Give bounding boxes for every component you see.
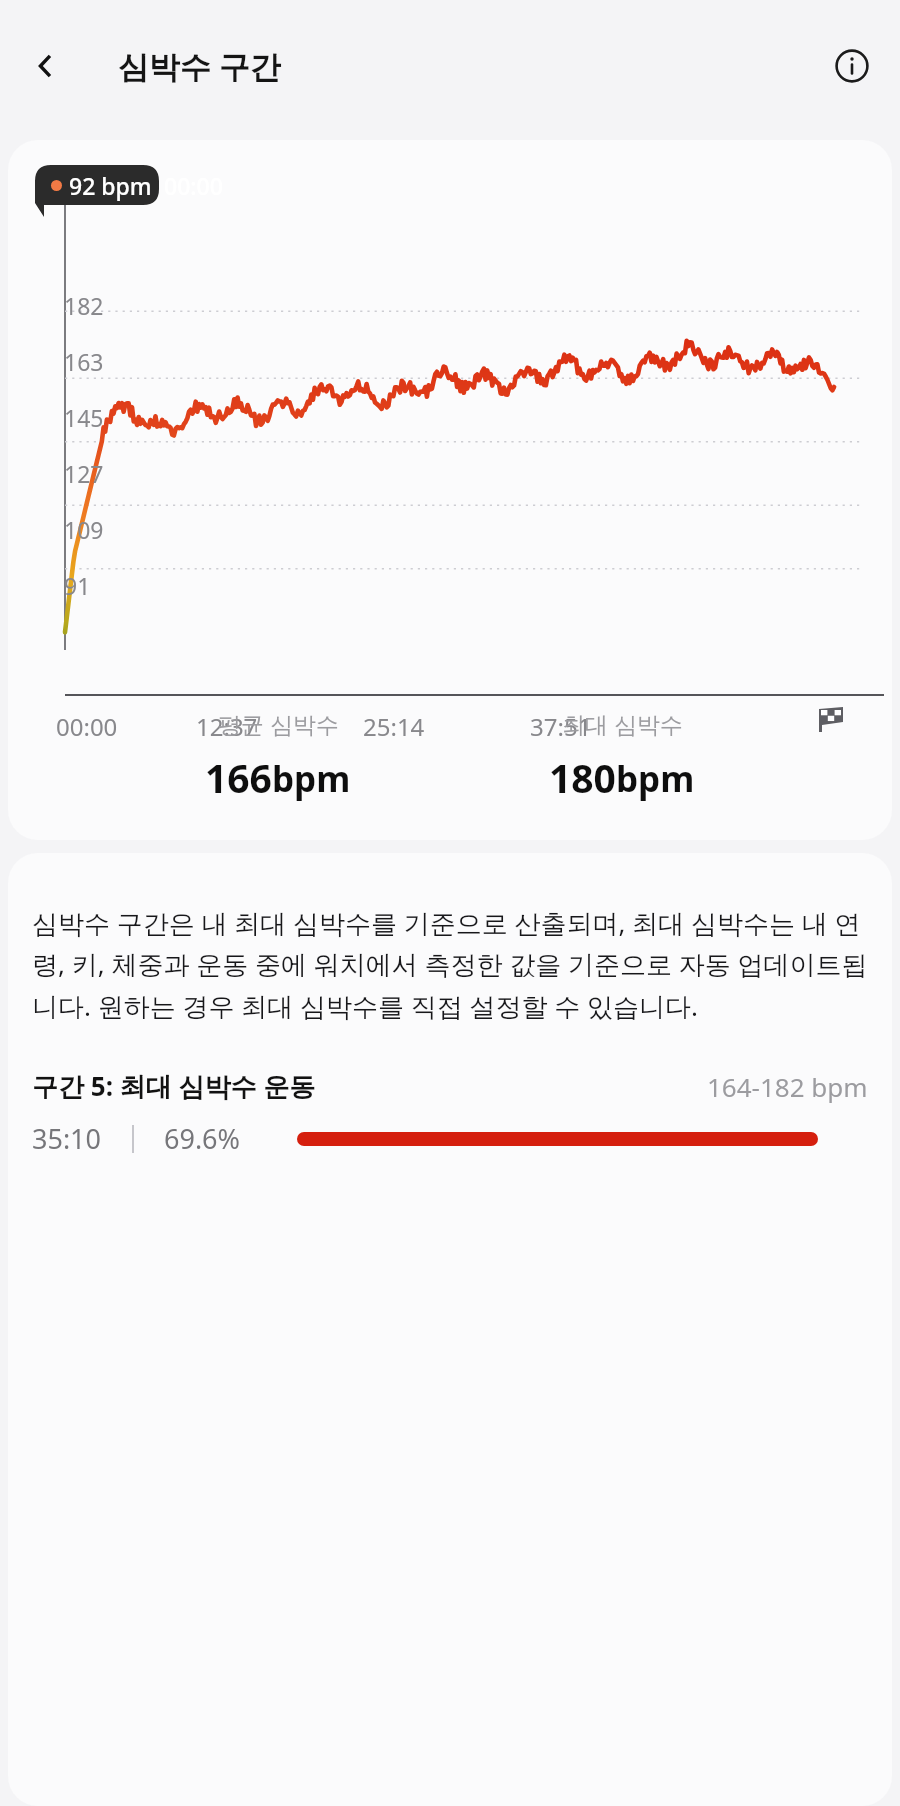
staticText: 37:51: [530, 710, 592, 743]
staticText: 127: [64, 458, 104, 489]
staticText: 구간 5: 최대 심박수 운동: [32, 1068, 316, 1104]
button[interactable]: 구간 5: 최대 심박수 운동: [32, 1068, 868, 1157]
staticText: 심박수 구간은 내 최대 심박수를 기준으로 산출되며, 최대 심박수는 내 연…: [32, 905, 868, 1024]
button[interactable]: 정보: [822, 36, 882, 96]
staticText: 69.6%: [164, 1120, 241, 1157]
staticText: 166: [205, 751, 272, 804]
button[interactable]: 뒤로: [16, 36, 76, 96]
staticText: 25:14: [363, 710, 425, 743]
staticText: 00:00: [56, 710, 118, 743]
staticText: 92 bpm: [69, 170, 152, 201]
staticText: 180: [549, 751, 616, 804]
staticText: 91: [64, 570, 91, 601]
staticText: bpm: [272, 755, 351, 803]
staticText: bpm: [616, 755, 695, 803]
staticText: 163: [64, 346, 104, 377]
staticText: 평균 심박수: [218, 708, 339, 739]
staticText: 최대 심박수: [562, 708, 683, 739]
staticText: 109: [64, 514, 104, 545]
staticText: 182: [64, 290, 104, 321]
staticText: 145: [64, 402, 104, 433]
staticText: 164-182 bpm: [707, 1069, 868, 1104]
staticText: 12:37: [196, 710, 258, 743]
staticText: 심박수 구간: [118, 45, 282, 87]
staticText: 35:10: [32, 1120, 102, 1157]
